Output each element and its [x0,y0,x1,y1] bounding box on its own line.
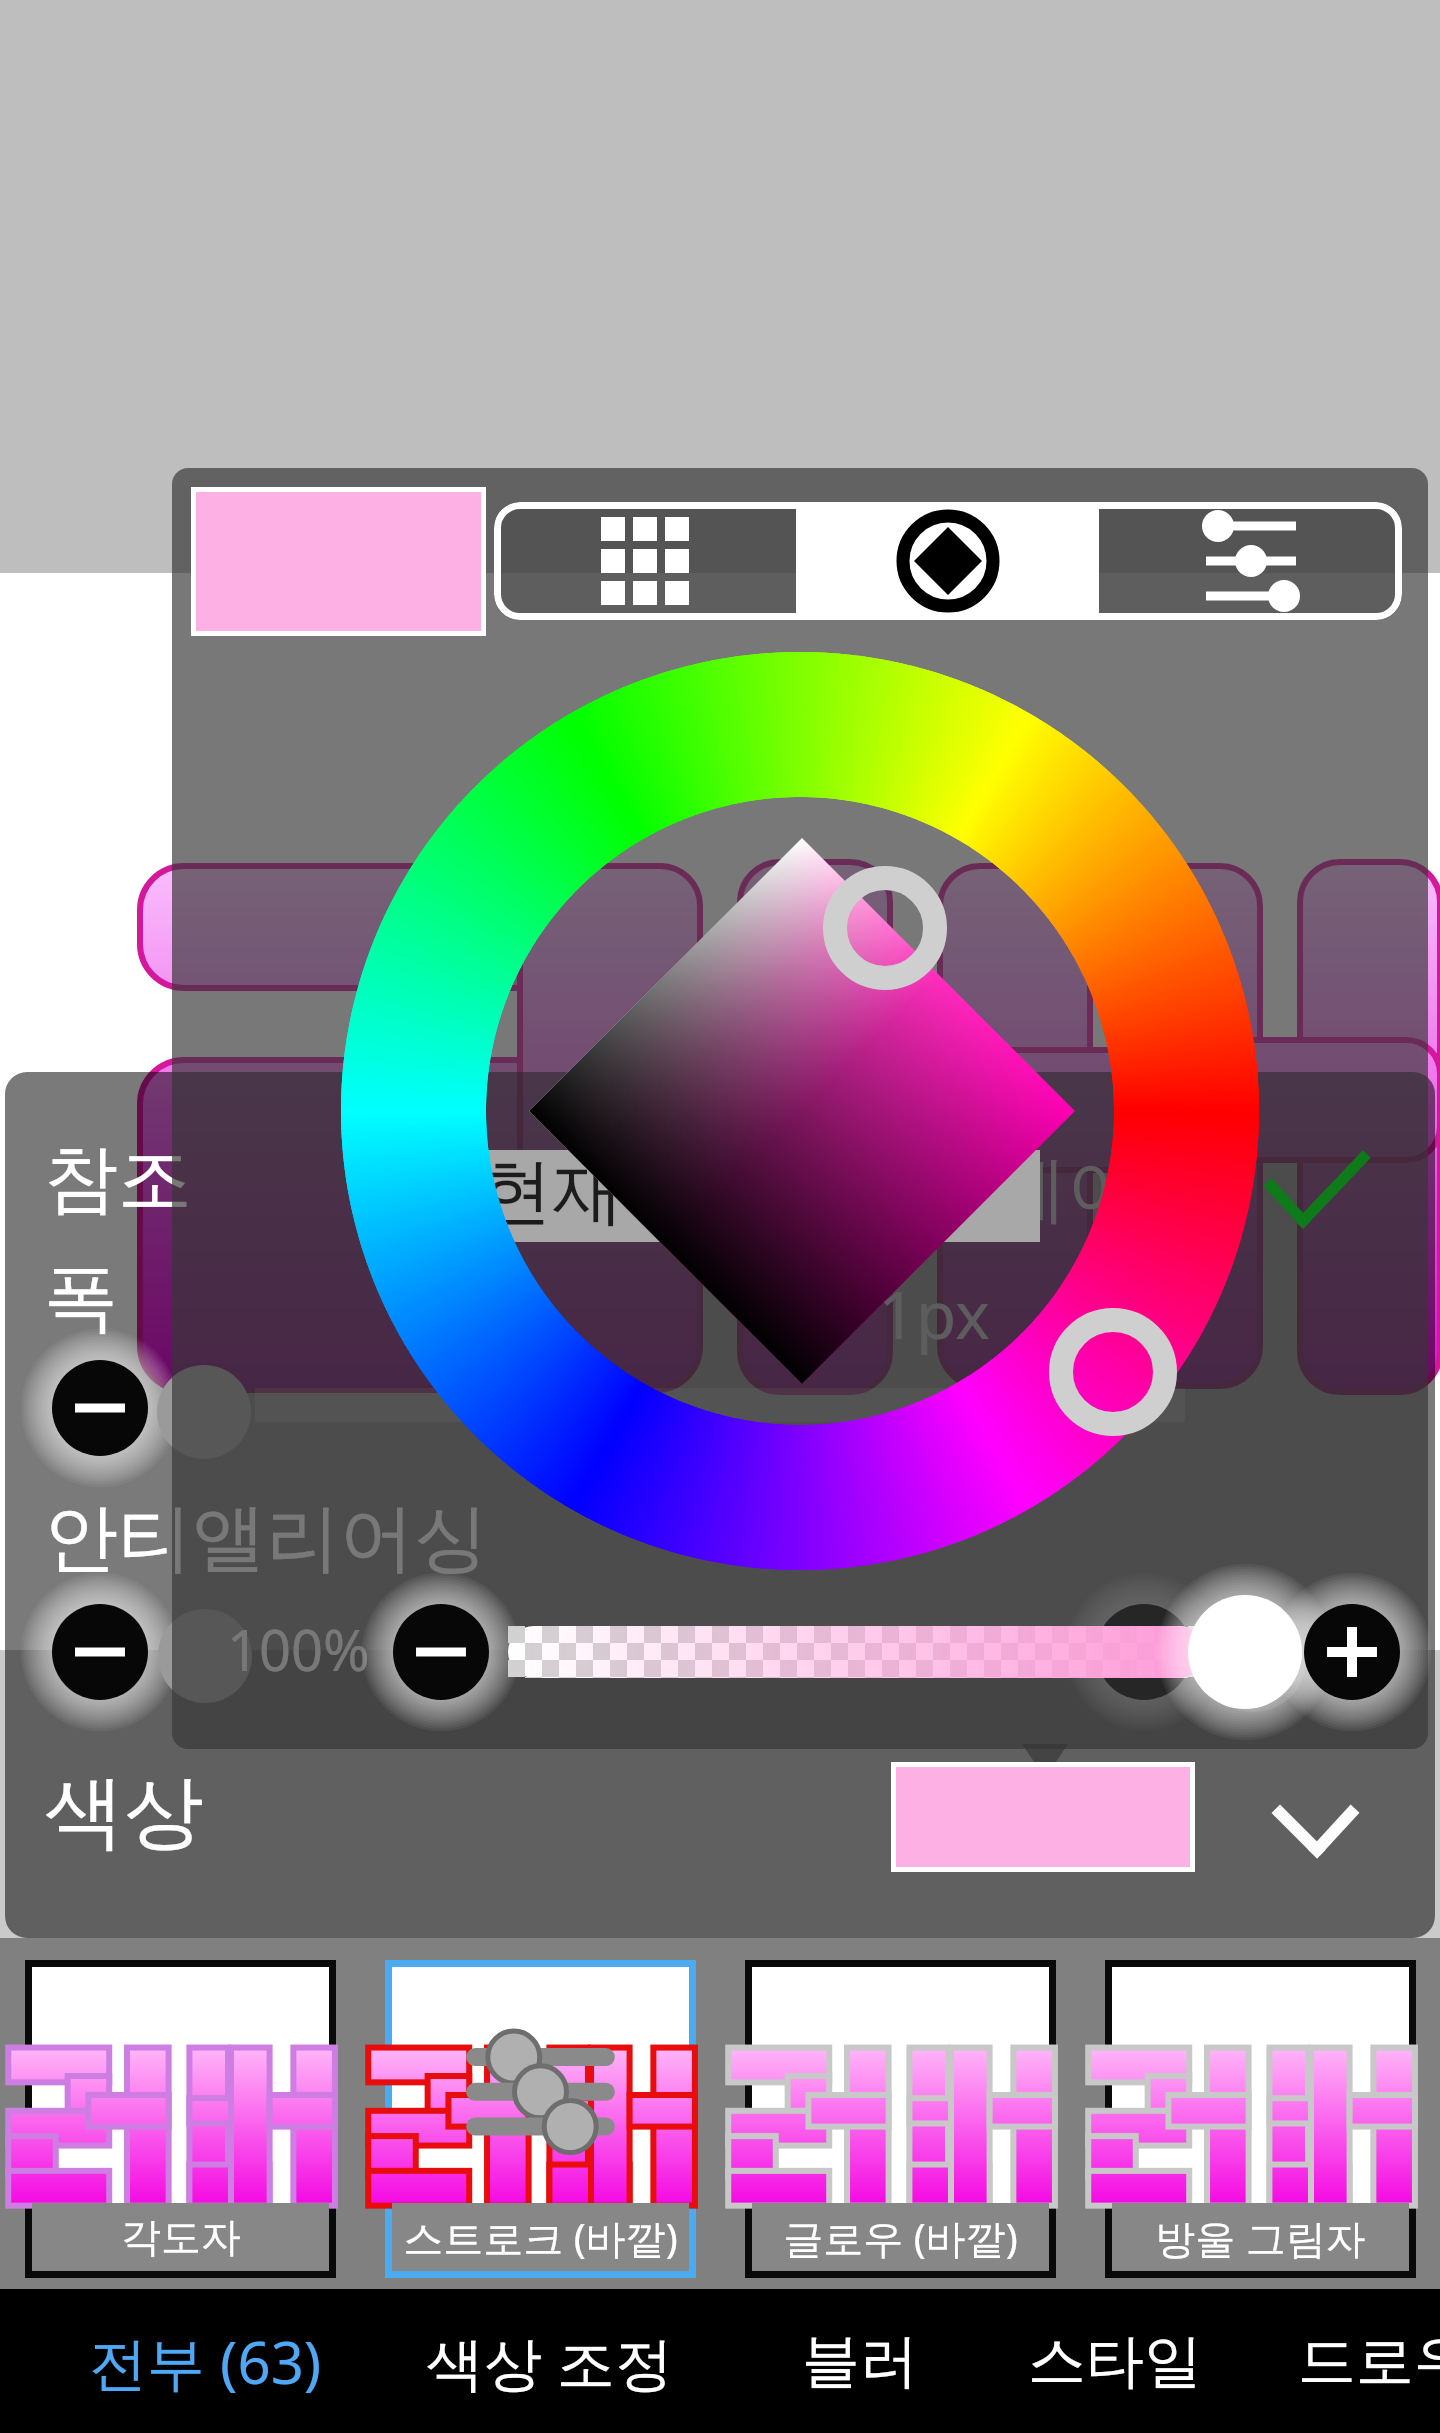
staticText: 안티앨리어싱 [44,1492,488,1585]
staticText: 참조 [44,1133,192,1226]
button[interactable]: 색상 조정 [400,2289,700,2433]
button[interactable]: 스타일 [1000,2289,1230,2433]
staticText: 각도자 [121,2212,241,2262]
staticText: 현재 [480,1147,624,1238]
button[interactable]: 스트로크 (바깥) [392,1967,689,2271]
staticText: 색상 [44,1762,204,1863]
staticText: 폭 [44,1252,118,1345]
button[interactable]: 각도자 [32,1967,329,2271]
button[interactable]: 방울 그림자 [1112,1967,1409,2271]
button[interactable]: Colour wheel [796,502,1099,620]
staticText: 색상 조정 [426,2322,674,2401]
button[interactable]: 전부 (63) [40,2289,370,2433]
staticText: 1px [878,1268,990,1358]
staticText: 방울 그림자 [1155,2210,1366,2265]
staticText: 100% [227,1611,370,1687]
button[interactable]: 글로우 (바깥) [752,1967,1049,2271]
button[interactable]: Palette grid [494,502,796,620]
button[interactable]: Sliders [1099,502,1402,620]
staticText: 글로우 (바깥) [783,2210,1018,2265]
staticText: 드로우 [1298,2325,1440,2398]
staticText: 전부 (63) [89,2322,322,2401]
staticText: 블러 [802,2325,918,2398]
staticText: 스타일 [1028,2325,1202,2398]
staticText: 스트로크 (바깥) [403,2210,678,2265]
button[interactable]: 드로우 [1270,2289,1440,2433]
button[interactable]: Expand [1252,1772,1380,1900]
staticText: 레이어 [995,1145,1211,1236]
button[interactable]: 블러 [760,2289,960,2433]
